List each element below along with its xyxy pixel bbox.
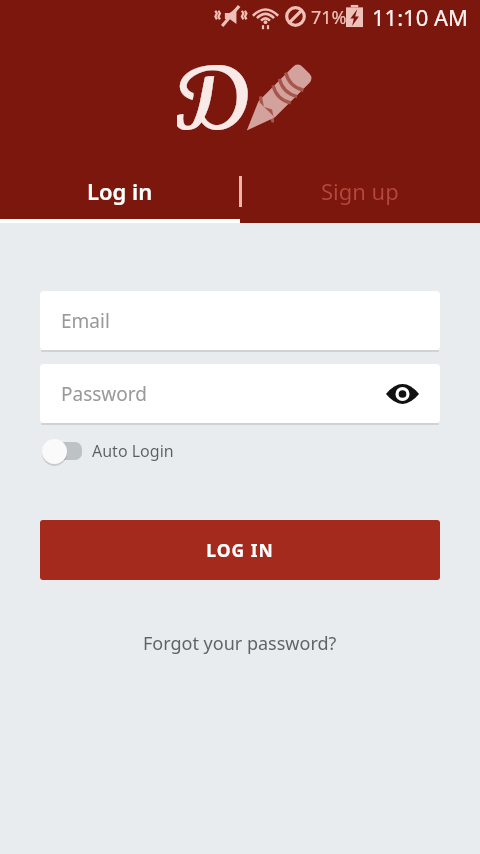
- staticText: D: [177, 40, 250, 140]
- button[interactable]: Sign up: [240, 163, 480, 223]
- button[interactable]: LOG IN: [40, 520, 440, 580]
- staticText: Auto Login: [92, 440, 174, 462]
- button[interactable]: Log in: [0, 163, 240, 223]
- staticText: 11:10 AM: [372, 2, 468, 32]
- button[interactable]: Show password: [384, 376, 420, 412]
- button[interactable]: Forgot your password?: [133, 625, 347, 662]
- staticText: Email: [61, 308, 110, 334]
- staticText: Log in: [87, 176, 153, 206]
- button[interactable]: Email: [40, 291, 440, 350]
- button[interactable]: Password: [40, 364, 440, 423]
- button[interactable]: Auto Login: [40, 437, 174, 465]
- staticText: Password: [61, 381, 147, 407]
- staticText: LOG IN: [206, 538, 274, 562]
- staticText: Forgot your password?: [143, 631, 337, 656]
- staticText: Sign up: [321, 176, 399, 206]
- staticText: 71%: [311, 5, 347, 30]
